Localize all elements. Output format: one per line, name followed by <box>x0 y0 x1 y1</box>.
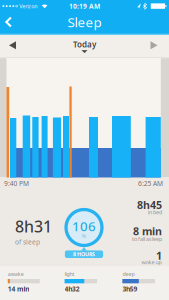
staticText: 8 min <box>133 224 162 238</box>
staticText: awake <box>8 270 24 278</box>
staticText: of sleep <box>15 238 40 246</box>
staticText: 1 <box>156 248 162 263</box>
button[interactable] <box>1 38 23 52</box>
staticText: to fall asleep <box>132 235 162 243</box>
staticText: 4h32 <box>65 285 80 293</box>
button[interactable]: 106 <box>57 204 111 262</box>
staticText: Verizon <box>19 3 37 10</box>
staticText: 3h59 <box>122 285 137 293</box>
staticText: 8h45 <box>137 198 162 212</box>
staticText: Sleep <box>67 13 101 31</box>
staticText: 8h31 <box>15 216 52 237</box>
staticText: 10:19 AM <box>69 2 100 11</box>
staticText: 9:40 PM <box>4 179 29 188</box>
staticText: woke up <box>141 259 161 266</box>
staticText: 6:25 AM <box>138 179 163 188</box>
button[interactable] <box>143 38 165 52</box>
staticText: Today <box>73 39 96 50</box>
staticText: % <box>81 232 86 240</box>
staticText: 106 <box>72 217 96 235</box>
button[interactable] <box>2 16 15 29</box>
staticText: in bed <box>148 209 162 216</box>
staticText: deep <box>122 270 134 278</box>
staticText: light <box>65 270 75 278</box>
staticText: 14 min <box>8 285 29 293</box>
staticText: 8 HOURS <box>73 251 95 258</box>
button[interactable]: Today <box>54 34 114 56</box>
